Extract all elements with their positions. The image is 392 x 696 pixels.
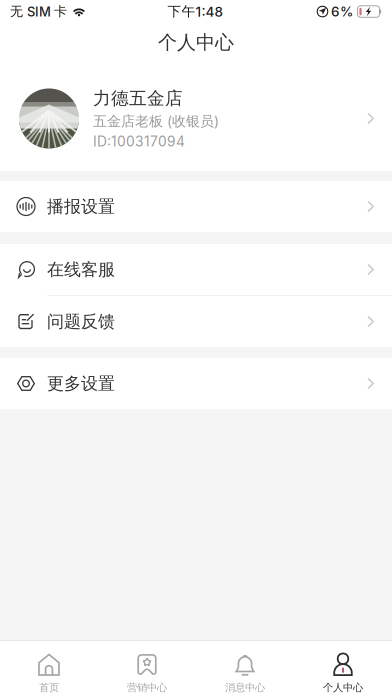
- staticText: 首页: [39, 681, 59, 694]
- button[interactable]: 力德五金店: [0, 66, 392, 171]
- button[interactable]: 播报设置: [0, 181, 392, 232]
- staticText: 6%: [331, 3, 353, 20]
- staticText: ID:100317094: [93, 133, 185, 150]
- button[interactable]: 首页: [0, 641, 98, 696]
- staticText: 五金店老板 (收银员): [93, 112, 219, 130]
- button[interactable]: 问题反馈: [0, 296, 392, 347]
- staticText: 营销中心: [127, 681, 167, 694]
- staticText: 问题反馈: [47, 311, 115, 332]
- staticText: 力德五金店: [93, 87, 183, 109]
- staticText: 无 SIM 卡: [10, 3, 67, 20]
- button[interactable]: 更多设置: [0, 358, 392, 409]
- staticText: 消息中心: [225, 681, 265, 694]
- staticText: 在线客服: [47, 259, 115, 280]
- staticText: 个人中心: [323, 681, 363, 694]
- button[interactable]: 在线客服: [0, 244, 392, 295]
- staticText: 个人中心: [158, 30, 234, 54]
- button[interactable]: 个人中心: [294, 641, 392, 696]
- button[interactable]: 营销中心: [98, 641, 196, 696]
- button[interactable]: 消息中心: [196, 641, 294, 696]
- staticText: 更多设置: [47, 373, 115, 394]
- staticText: 播报设置: [47, 196, 115, 217]
- staticText: 下午1:48: [167, 3, 222, 20]
